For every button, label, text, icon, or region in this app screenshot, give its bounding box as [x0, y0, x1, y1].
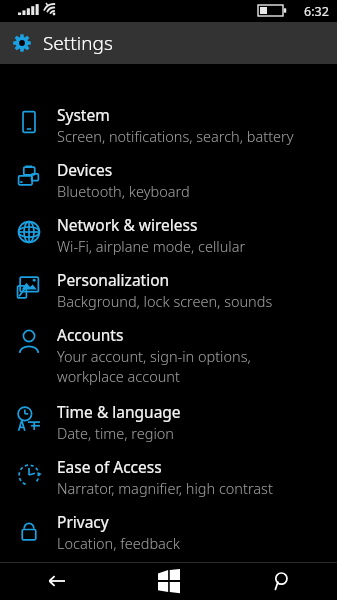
staticText: Accounts: [57, 324, 124, 345]
button[interactable]: System: [0, 104, 337, 159]
staticText: 6:32: [304, 3, 329, 20]
button[interactable]: Settings: [0, 22, 337, 64]
button[interactable]: Accounts: [0, 324, 337, 401]
staticText: Personalization: [57, 269, 170, 290]
staticText: System: [57, 104, 110, 125]
button[interactable]: Start: [113, 562, 225, 600]
button[interactable]: Update & security: [0, 566, 337, 600]
staticText: Date, time, region: [57, 423, 174, 443]
button[interactable]: Time & language: [0, 401, 337, 456]
staticText: Wi-Fi, airplane mode, cellular: [57, 236, 246, 256]
staticText: workplace account: [57, 366, 180, 386]
staticText: Devices: [57, 159, 113, 180]
staticText: Ease of Access: [57, 456, 162, 477]
button[interactable]: Back: [0, 562, 113, 600]
button[interactable]: Privacy: [0, 511, 337, 566]
button[interactable]: Ease of Access: [0, 456, 337, 511]
staticText: Time & language: [57, 401, 181, 422]
staticText: Screen, notifications, search, battery: [57, 126, 294, 146]
button[interactable]: Devices: [0, 159, 337, 214]
staticText: Bluetooth, keyboard: [57, 181, 190, 201]
staticText: Network & wireless: [57, 214, 198, 235]
staticText: Settings: [43, 30, 113, 56]
staticText: Update & security: [57, 566, 187, 587]
staticText: Background, lock screen, sounds: [57, 291, 273, 311]
staticText: Location, feedback: [57, 533, 180, 553]
button[interactable]: Network & wireless: [0, 214, 337, 269]
staticText: Windows Update, recovery, backup: [57, 588, 286, 600]
staticText: Your account, sign-in options,: [57, 346, 251, 366]
staticText: Narrator, magnifier, high contrast: [57, 478, 273, 498]
button[interactable]: Search: [225, 562, 337, 600]
button[interactable]: Personalization: [0, 269, 337, 324]
staticText: Privacy: [57, 511, 109, 532]
